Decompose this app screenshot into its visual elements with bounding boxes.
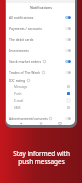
button[interactable]: Recents bbox=[58, 122, 62, 125]
staticText: SMS bbox=[14, 106, 21, 110]
button[interactable]: Checkbox checked bbox=[67, 92, 70, 95]
staticText: Payments / accounts bbox=[9, 26, 42, 31]
staticText: Stock market orders bbox=[9, 59, 42, 64]
button[interactable]: All notifications bbox=[6, 12, 75, 23]
staticText: IDC rating bbox=[9, 78, 26, 83]
button[interactable]: Toggle bbox=[65, 49, 71, 52]
button[interactable]: Home bbox=[39, 122, 43, 125]
button[interactable]: Toggle bbox=[65, 71, 71, 74]
staticText: Notifications bbox=[30, 5, 52, 10]
staticText: Investments bbox=[9, 48, 29, 53]
staticText: Trades of The Week bbox=[9, 70, 41, 75]
staticText: Push bbox=[14, 92, 22, 96]
staticText: Message bbox=[14, 85, 28, 89]
button[interactable]: The debit cards bbox=[6, 34, 75, 45]
staticText: The debit cards bbox=[9, 37, 34, 42]
button[interactable]: E-mail bbox=[6, 97, 75, 104]
button[interactable]: Push bbox=[6, 90, 75, 97]
button[interactable]: Investments bbox=[6, 45, 75, 56]
button[interactable]: Toggle bbox=[65, 60, 71, 63]
button[interactable]: Toggle bbox=[65, 117, 71, 120]
button[interactable]: Stock market orders bbox=[6, 56, 75, 67]
staticText: Advertisement/consents bbox=[9, 116, 48, 121]
staticText: Stay informed with push messages bbox=[13, 149, 70, 166]
button[interactable]: Advertisement/consents bbox=[6, 114, 75, 122]
button[interactable]: Toggle bbox=[65, 16, 71, 19]
button[interactable]: Toggle bbox=[65, 27, 71, 30]
button[interactable]: Checkbox unchecked bbox=[67, 99, 70, 102]
button[interactable]: Back bbox=[19, 122, 23, 125]
button[interactable]: IDC rating bbox=[6, 77, 75, 83]
button[interactable]: Payments / accounts bbox=[6, 23, 75, 34]
button[interactable]: SMS bbox=[6, 104, 75, 111]
staticText: All notifications bbox=[9, 15, 34, 20]
button[interactable]: Trades of The Week bbox=[6, 67, 75, 77]
button[interactable]: Message bbox=[6, 83, 75, 90]
staticText: E-mail bbox=[14, 99, 24, 103]
button[interactable]: Toggle bbox=[65, 38, 71, 41]
